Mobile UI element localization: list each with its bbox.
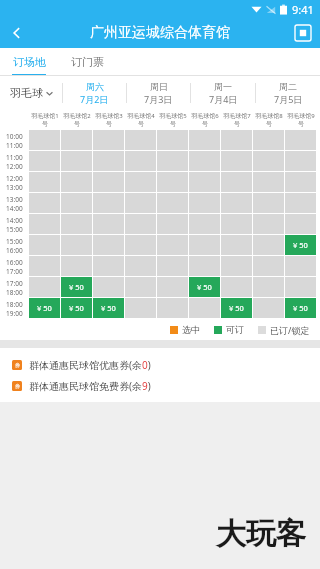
staticText: 周一: [214, 81, 232, 92]
button[interactable]: Venue map: [286, 18, 320, 48]
button[interactable]: 券: [0, 375, 320, 396]
button[interactable]: 周六: [63, 76, 126, 110]
button[interactable]: Back: [0, 18, 34, 48]
button[interactable]: ¥ 50: [285, 298, 316, 318]
button[interactable]: ¥ 50: [221, 298, 252, 318]
button[interactable]: ¥ 50: [189, 277, 220, 297]
button[interactable]: 订场地: [0, 48, 58, 76]
button[interactable]: ¥ 50: [61, 298, 92, 318]
staticText: 13:00: [6, 183, 23, 192]
staticText: 羽毛球馆1号: [29, 112, 61, 128]
staticText: 16:00: [6, 258, 23, 267]
staticText: 广州亚运城综合体育馆: [90, 24, 230, 42]
button[interactable]: ¥ 50: [61, 277, 92, 297]
staticText: 已订/锁定: [270, 324, 310, 336]
button[interactable]: 周一: [191, 76, 255, 110]
button[interactable]: ¥ 50: [285, 235, 316, 255]
button[interactable]: ¥ 50: [93, 298, 124, 318]
button[interactable]: 羽毛球: [0, 76, 62, 110]
button[interactable]: 周日: [127, 76, 190, 110]
button[interactable]: 券: [0, 354, 320, 375]
button[interactable]: ¥ 50: [29, 298, 60, 318]
button[interactable]: 订门票: [58, 48, 116, 76]
staticText: 15:00: [6, 225, 23, 234]
staticText: 12:00: [6, 162, 23, 171]
button[interactable]: 周二: [256, 76, 320, 110]
